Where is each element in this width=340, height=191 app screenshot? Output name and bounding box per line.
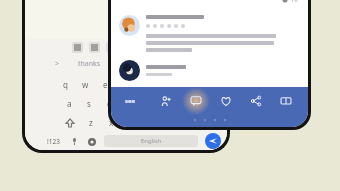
- staticText: d: [107, 98, 112, 109]
- button[interactable]: e: [95, 75, 115, 94]
- button[interactable]: Settings: [86, 136, 97, 147]
- staticText: English: [141, 137, 162, 145]
- button[interactable]: Comment: [186, 91, 206, 111]
- staticText: a: [67, 98, 72, 109]
- staticText: e: [103, 79, 108, 90]
- button[interactable]: a: [59, 94, 79, 113]
- staticText: thanks: [78, 59, 101, 69]
- button[interactable]: Toolbar item: [89, 42, 100, 53]
- staticText: c: [129, 117, 133, 128]
- staticText: see: [125, 97, 136, 105]
- button[interactable]: !123: [47, 137, 60, 146]
- button[interactable]: Profile picture: [119, 15, 140, 36]
- button[interactable]: Profile picture: [119, 60, 140, 81]
- button[interactable]: Add person: [156, 91, 176, 111]
- staticText: w: [82, 79, 89, 90]
- button[interactable]: s: [79, 94, 99, 113]
- button[interactable]: z: [81, 113, 101, 132]
- button[interactable]: Send: [205, 133, 221, 149]
- button[interactable]: Like: [216, 91, 236, 111]
- button[interactable]: d: [99, 94, 119, 113]
- staticText: >: [55, 59, 60, 69]
- button[interactable]: Shift: [63, 116, 76, 129]
- staticText: 1K: [291, 0, 298, 3]
- button[interactable]: w: [75, 75, 95, 94]
- staticText: r: [123, 79, 127, 90]
- staticText: s: [87, 98, 91, 109]
- button[interactable]: x: [101, 113, 121, 132]
- button[interactable]: English: [104, 135, 198, 147]
- staticText: q: [63, 79, 68, 90]
- button[interactable]: r: [115, 75, 135, 94]
- button[interactable]: Library: [276, 91, 296, 111]
- button[interactable]: Toolbar item: [106, 42, 117, 53]
- button[interactable]: Voice input: [69, 136, 80, 147]
- button[interactable]: Share: [246, 91, 266, 111]
- button[interactable]: q: [55, 75, 75, 94]
- button[interactable]: Toolbar item: [72, 42, 83, 53]
- button[interactable]: c: [121, 113, 141, 132]
- staticText: z: [89, 117, 93, 128]
- staticText: x: [109, 117, 114, 128]
- staticText: !123: [47, 137, 60, 146]
- button[interactable]: see: [125, 97, 136, 105]
